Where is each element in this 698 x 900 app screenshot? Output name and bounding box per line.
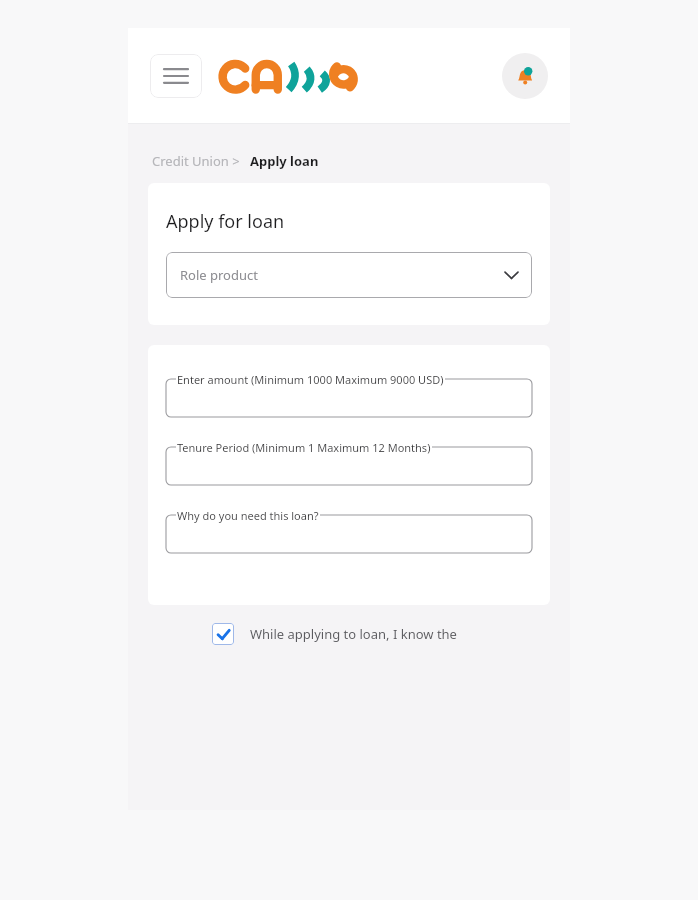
staticText: Apply loan [250,152,319,170]
staticText: Tenure Period (Minimum 1 Maximum 12 Mont… [177,440,431,455]
button[interactable]: Open menu [150,54,202,98]
button[interactable]: Why do you need this loan? [166,515,532,553]
button[interactable]: Tenure Period (Minimum 1 Maximum 12 Mont… [166,447,532,485]
button[interactable]: Enter amount (Minimum 1000 Maximum 9000 … [166,379,532,417]
staticText: Apply for loan [166,209,285,234]
staticText: While applying to loan, I know the [250,625,457,643]
button[interactable]: While applying to loan, I know the [212,623,546,645]
staticText: Why do you need this loan? [177,508,319,523]
button[interactable]: Role product [166,252,532,298]
staticText: Role product [180,266,258,284]
button[interactable]: Notifications [502,53,548,99]
button[interactable]: Credit Union > [152,152,240,170]
staticText: Enter amount (Minimum 1000 Maximum 9000 … [177,372,444,387]
